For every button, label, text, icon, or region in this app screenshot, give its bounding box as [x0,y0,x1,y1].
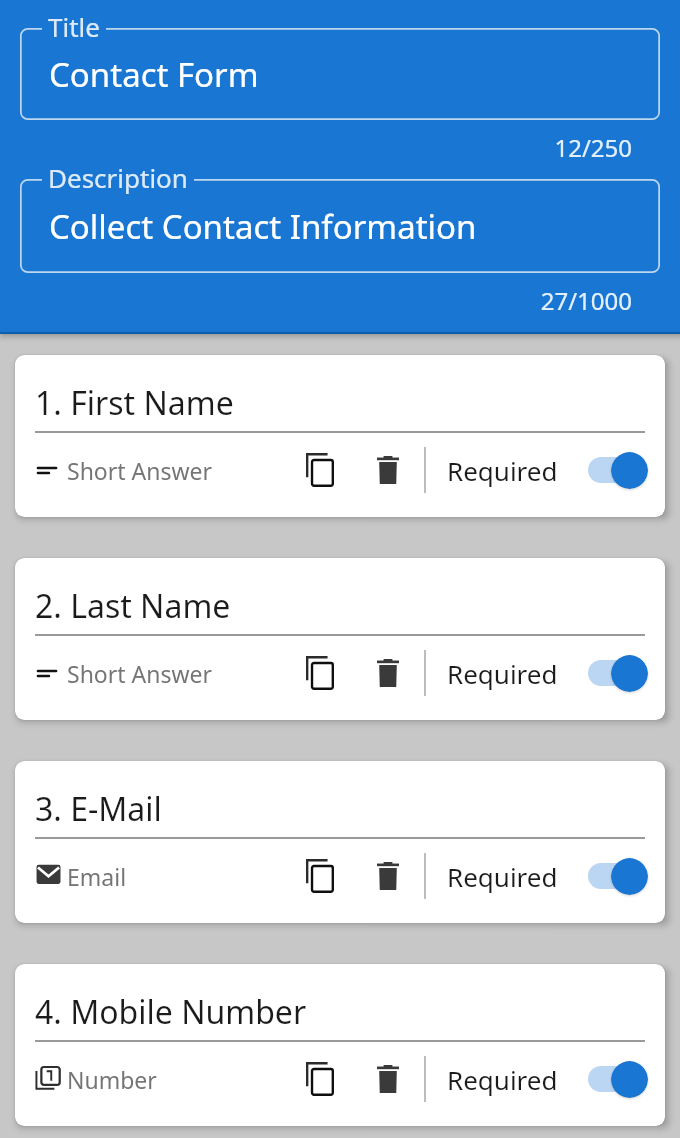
staticText: Contact Form [49,52,259,97]
button[interactable]: Required toggle [588,1056,645,1102]
staticText: 27/1000 [0,284,632,317]
button[interactable]: Required toggle [588,853,645,899]
staticText: Required [447,859,558,894]
button[interactable]: Duplicate [297,853,343,899]
staticText: Required [447,453,558,488]
button[interactable]: Email [35,861,127,892]
staticText: Title [48,9,100,44]
staticText: 2. Last Name [35,584,231,628]
staticText: 4. Mobile Number [35,990,307,1034]
button[interactable]: Required toggle [588,650,645,696]
button[interactable]: 4. Mobile Number [15,964,665,1126]
staticText: Short Answer [67,658,213,689]
staticText: Description [48,160,188,195]
button[interactable]: 1. First Name [15,355,665,517]
staticText: Required [447,656,558,691]
staticText: Email [67,861,127,892]
button[interactable]: Required toggle [588,447,645,493]
button[interactable]: Short Answer [35,658,213,689]
button[interactable]: Delete [365,1056,411,1102]
button[interactable]: Delete [365,853,411,899]
staticText: Required [447,1062,558,1097]
button[interactable]: Duplicate [297,447,343,493]
button[interactable]: Delete [365,447,411,493]
staticText: 1. First Name [35,381,234,425]
button[interactable]: 2. Last Name [15,558,665,720]
staticText: 3. E-Mail [35,787,162,831]
staticText: Number [67,1064,157,1095]
staticText: Short Answer [67,455,213,486]
button[interactable]: 3. E-Mail [15,761,665,923]
button[interactable]: Number [35,1064,157,1095]
button[interactable]: Collect Contact Information [20,179,660,273]
button[interactable]: Short Answer [35,455,213,486]
staticText: Collect Contact Information [49,204,477,249]
button[interactable]: Delete [365,650,411,696]
button[interactable]: Contact Form [20,28,660,120]
button[interactable]: Duplicate [297,650,343,696]
button[interactable]: Duplicate [297,1056,343,1102]
staticText: 12/250 [0,131,632,164]
